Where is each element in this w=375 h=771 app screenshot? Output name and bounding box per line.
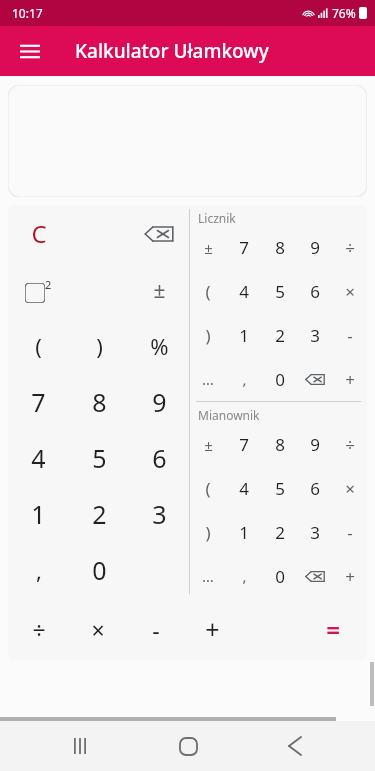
staticText: 3 (310, 324, 320, 347)
button[interactable]: … (190, 357, 226, 401)
button[interactable]: , (226, 357, 262, 401)
button[interactable]: ( (8, 318, 69, 374)
staticText: , (36, 555, 42, 585)
button[interactable]: 7 (226, 423, 262, 466)
button[interactable]: Square (8, 262, 69, 318)
button[interactable]: 9 (129, 374, 189, 430)
button[interactable]: Home (160, 721, 216, 771)
staticText: 1 (239, 324, 249, 347)
button[interactable]: ( (190, 269, 226, 313)
staticText: ± (204, 238, 213, 258)
button[interactable]: ) (190, 313, 226, 357)
button[interactable]: Backspace (297, 554, 332, 598)
staticText: 2 (92, 497, 107, 531)
button[interactable]: ) (69, 318, 129, 374)
button[interactable]: ± (129, 262, 189, 318)
staticText: ) (205, 521, 211, 544)
button[interactable]: 7 (8, 374, 69, 430)
button[interactable]: 0 (262, 357, 297, 401)
button[interactable]: 8 (262, 226, 297, 269)
button[interactable]: 6 (297, 466, 332, 510)
button[interactable]: ÷ (8, 598, 69, 660)
button[interactable]: × (332, 466, 367, 510)
button[interactable]: 1 (226, 313, 262, 357)
button[interactable]: 8 (262, 423, 297, 466)
staticText: Mianownik (198, 407, 260, 423)
staticText: 7 (239, 236, 249, 259)
button[interactable]: 3 (297, 510, 332, 554)
button[interactable]: 5 (262, 269, 297, 313)
button[interactable]: 4 (226, 269, 262, 313)
staticText: 10:17 (12, 5, 43, 21)
staticText: 9 (310, 433, 320, 456)
button[interactable]: 8 (69, 374, 129, 430)
button[interactable]: … (190, 554, 226, 598)
button[interactable]: - (332, 510, 367, 554)
button[interactable]: Back (267, 721, 323, 771)
staticText: 5 (275, 280, 285, 303)
staticText: … (202, 369, 214, 389)
button[interactable]: Backspace (297, 357, 332, 401)
button[interactable]: = (304, 598, 361, 660)
button[interactable]: 4 (226, 466, 262, 510)
staticText: 7 (239, 433, 249, 456)
button[interactable]: 2 (262, 313, 297, 357)
button[interactable]: × (69, 598, 127, 660)
button[interactable]: 7 (226, 226, 262, 269)
button[interactable]: 0 (69, 542, 129, 598)
button[interactable]: ± (190, 226, 226, 269)
staticText: … (202, 566, 214, 586)
button[interactable]: 5 (262, 466, 297, 510)
staticText: ( (205, 280, 211, 303)
staticText: ÷ (32, 614, 46, 645)
button[interactable]: 9 (297, 226, 332, 269)
staticText: 2 (275, 324, 285, 347)
staticText: - (347, 324, 353, 347)
button[interactable]: ) (190, 510, 226, 554)
button[interactable]: Recent apps (52, 721, 108, 771)
staticText: ( (205, 477, 211, 500)
staticText: 1 (31, 497, 46, 531)
staticText: = (326, 613, 340, 646)
button[interactable]: 1 (8, 486, 69, 542)
button[interactable]: , (8, 542, 69, 598)
button[interactable]: 9 (297, 423, 332, 466)
button[interactable]: 1 (226, 510, 262, 554)
button[interactable]: % (129, 318, 189, 374)
button[interactable]: ÷ (332, 226, 367, 269)
button[interactable]: 6 (297, 269, 332, 313)
staticText: ± (153, 276, 166, 305)
button[interactable]: ÷ (332, 423, 367, 466)
button[interactable]: - (127, 598, 184, 660)
staticText: 76% (332, 5, 356, 21)
staticText: 5 (275, 477, 285, 500)
button[interactable]: ( (190, 466, 226, 510)
button[interactable]: C (8, 205, 69, 262)
button[interactable]: 2 (69, 486, 129, 542)
staticText: × (91, 614, 105, 645)
button[interactable]: 6 (129, 430, 189, 486)
button[interactable]: 4 (8, 430, 69, 486)
button[interactable]: Menu (10, 31, 50, 71)
staticText: 1 (239, 521, 249, 544)
staticText: 6 (310, 477, 320, 500)
button[interactable]: - (332, 313, 367, 357)
button[interactable]: 2 (262, 510, 297, 554)
staticText: 4 (239, 280, 249, 303)
button[interactable]: 3 (129, 486, 189, 542)
button[interactable]: , (226, 554, 262, 598)
button[interactable]: 0 (262, 554, 297, 598)
staticText: 4 (239, 477, 249, 500)
button[interactable]: × (332, 269, 367, 313)
button[interactable]: + (332, 554, 367, 598)
staticText: ) (96, 331, 103, 361)
button[interactable]: 3 (297, 313, 332, 357)
button[interactable]: 5 (69, 430, 129, 486)
staticText: ( (35, 331, 42, 361)
button[interactable]: + (184, 598, 241, 660)
button[interactable]: Backspace (129, 205, 189, 262)
staticText: 6 (152, 441, 167, 475)
button[interactable]: ± (190, 423, 226, 466)
button[interactable]: + (332, 357, 367, 401)
